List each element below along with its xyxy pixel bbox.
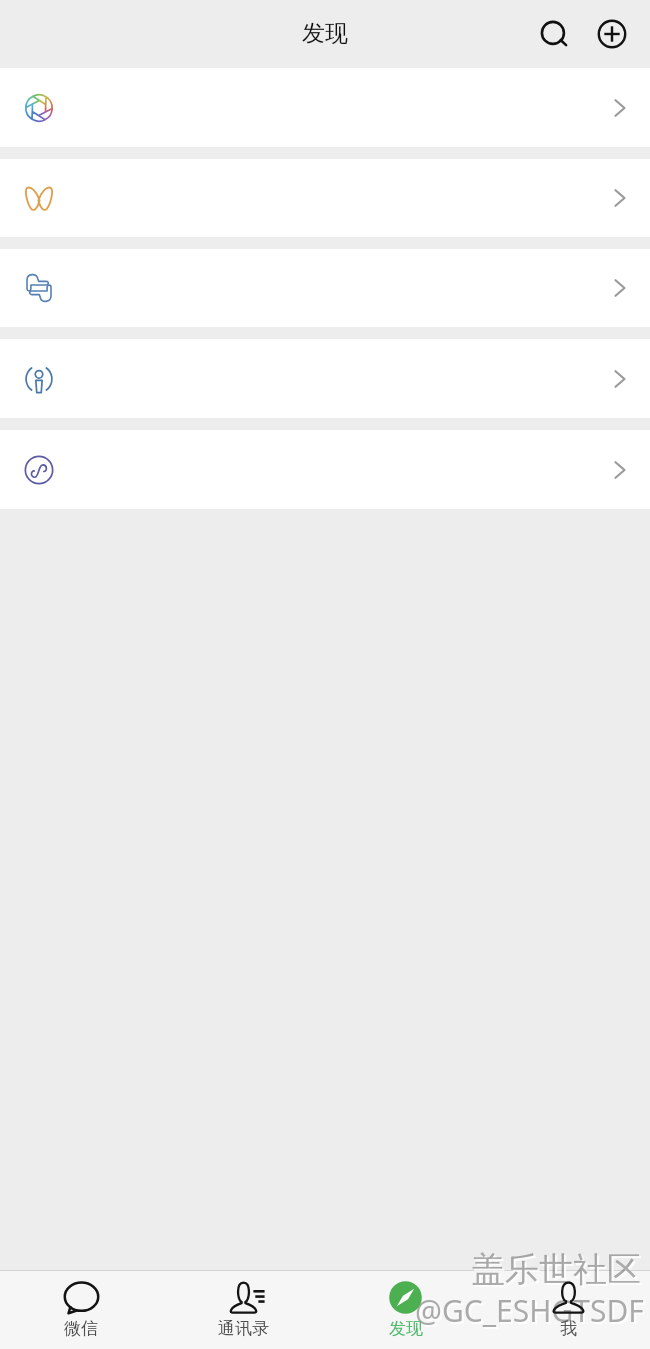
staticText: @GC_ESHGTSDF xyxy=(415,1290,644,1331)
staticText: 通讯录 xyxy=(218,1318,269,1339)
button[interactable]: 通讯录 xyxy=(162,1271,324,1349)
staticText: @GC_ESHGTSDF xyxy=(417,1292,646,1333)
staticText: 微信 xyxy=(64,1318,98,1339)
button[interactable]: Search xyxy=(530,10,577,57)
button[interactable]: 摇一摇 xyxy=(0,249,650,327)
staticText: 盖乐世社区 xyxy=(473,1250,643,1293)
button[interactable]: 直播 xyxy=(0,339,650,418)
button[interactable]: 微信 xyxy=(0,1271,162,1349)
button[interactable]: 我 xyxy=(487,1271,650,1349)
button[interactable]: 小程序 xyxy=(0,430,650,509)
button[interactable]: 朋友圈 xyxy=(0,68,650,147)
staticText: 发现 xyxy=(389,1318,423,1339)
button[interactable]: 视频号 xyxy=(0,159,650,237)
button[interactable]: Add xyxy=(588,10,635,57)
staticText: 我 xyxy=(560,1318,577,1339)
staticText: 盖乐世社区 xyxy=(471,1248,641,1291)
staticText: 发现 xyxy=(302,19,348,48)
button[interactable]: 发现 xyxy=(324,1271,487,1349)
